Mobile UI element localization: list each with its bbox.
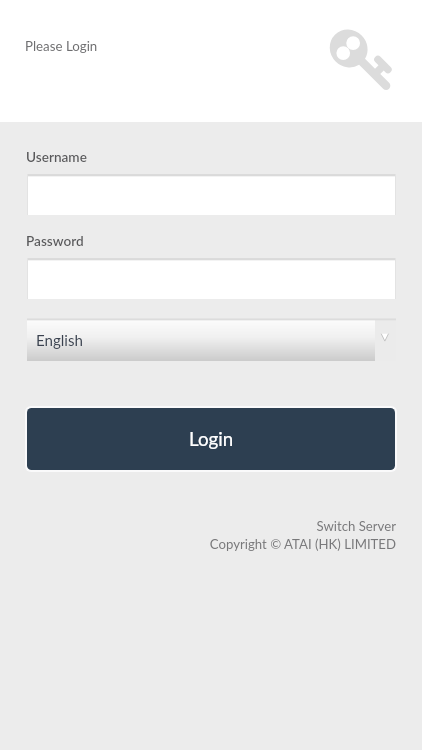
button[interactable]: Switch Server <box>0 518 396 534</box>
staticText: Password <box>26 233 84 249</box>
staticText: Please Login <box>25 38 98 54</box>
button[interactable]: Login <box>27 408 395 470</box>
staticText: Switch Server <box>316 518 396 534</box>
other: Key <box>326 26 406 106</box>
staticText: English <box>36 331 83 349</box>
button[interactable] <box>27 258 396 299</box>
button[interactable]: English <box>27 318 396 361</box>
staticText: Login <box>189 428 234 450</box>
staticText: Username <box>26 149 87 165</box>
button[interactable] <box>27 174 396 215</box>
staticText: Copyright © ATAI (HK) LIMITED <box>209 536 396 552</box>
